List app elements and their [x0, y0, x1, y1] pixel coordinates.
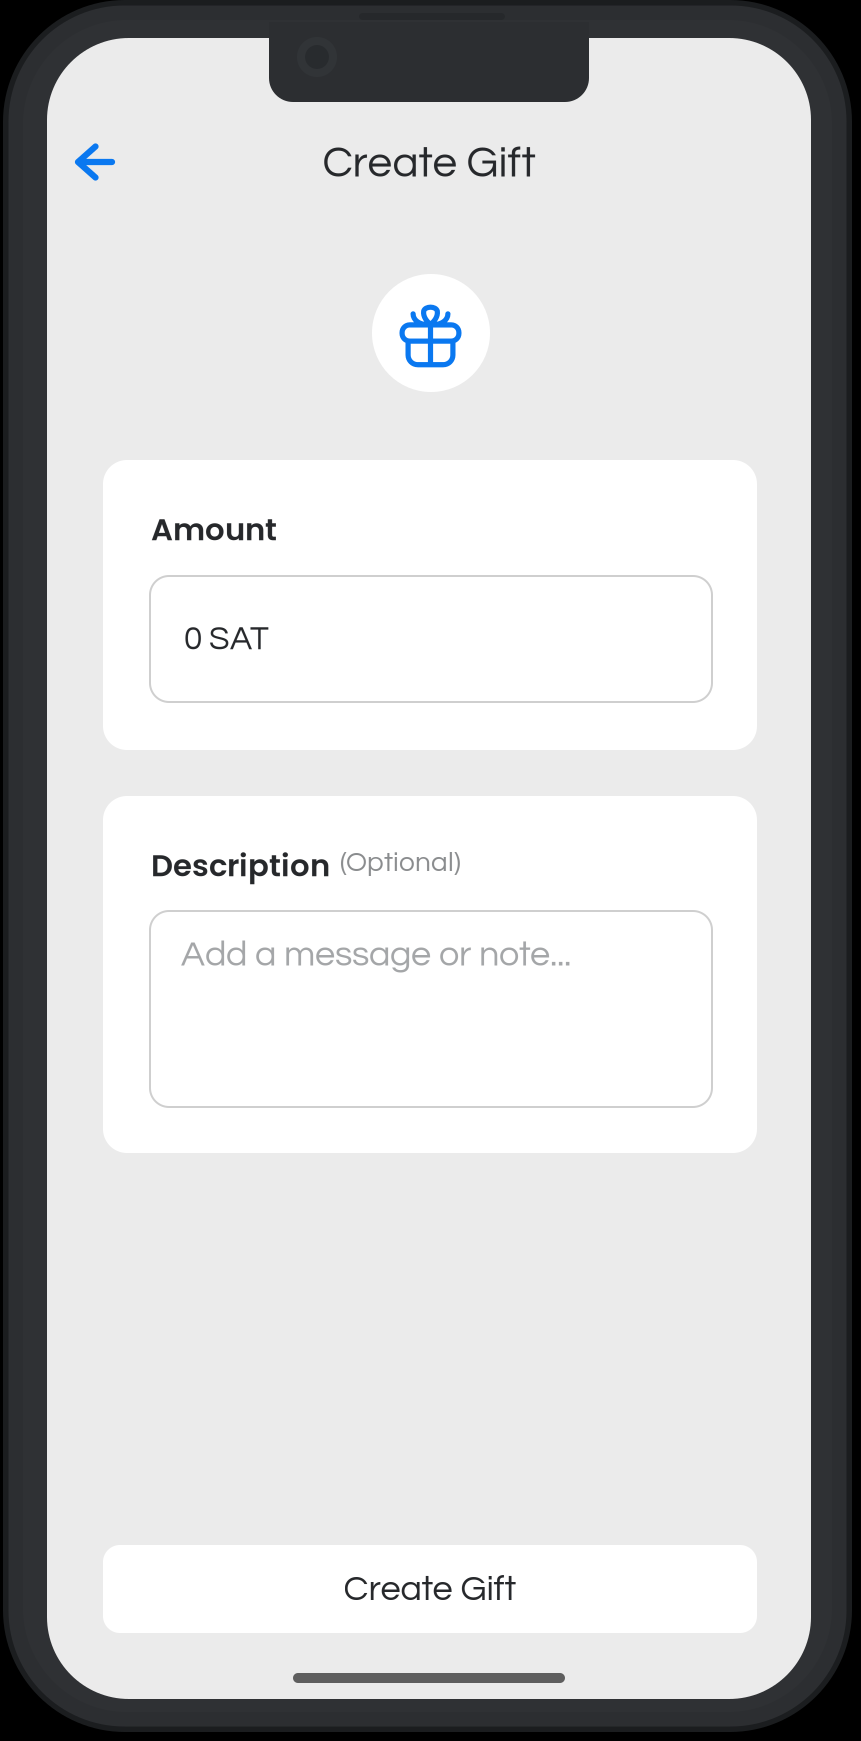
staticText: Create Gift: [343, 1570, 516, 1608]
button[interactable]: Add a message or note...: [150, 911, 712, 1107]
staticText: Amount: [151, 508, 277, 551]
staticText: 0 SAT: [184, 622, 269, 656]
button[interactable]: 0 SAT: [150, 576, 712, 702]
button[interactable]: Create Gift: [103, 1545, 757, 1633]
button[interactable]: Back: [64, 134, 126, 190]
staticText: Description: [151, 844, 330, 887]
staticText: Create Gift: [322, 140, 535, 186]
staticText: (Optional): [340, 848, 461, 877]
staticText: Add a message or note...: [181, 936, 571, 973]
